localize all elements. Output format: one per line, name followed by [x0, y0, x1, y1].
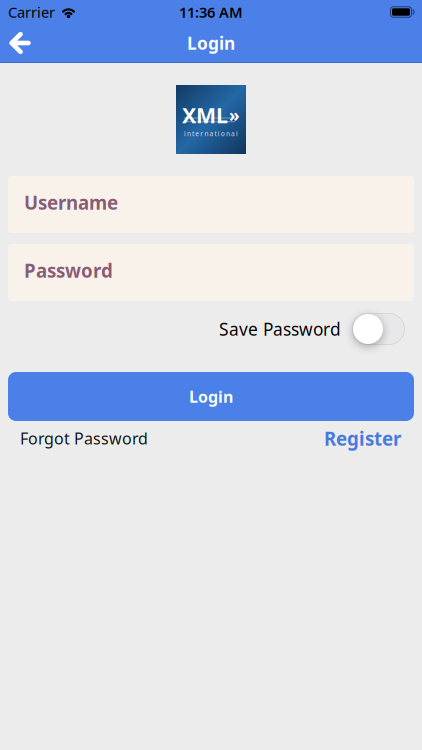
staticText: Login — [189, 386, 233, 407]
staticText: XML — [182, 101, 228, 129]
staticText: Username — [24, 190, 118, 215]
staticText: Register — [324, 426, 401, 451]
staticText: Login — [187, 31, 235, 54]
staticText: Forgot Password — [20, 428, 148, 449]
staticText: 11:36 AM — [179, 2, 243, 22]
staticText: » — [229, 104, 240, 127]
staticText: Password — [24, 258, 113, 283]
staticText: Carrier — [8, 2, 55, 22]
staticText: Save Password — [219, 317, 341, 340]
staticText: international — [184, 129, 238, 138]
